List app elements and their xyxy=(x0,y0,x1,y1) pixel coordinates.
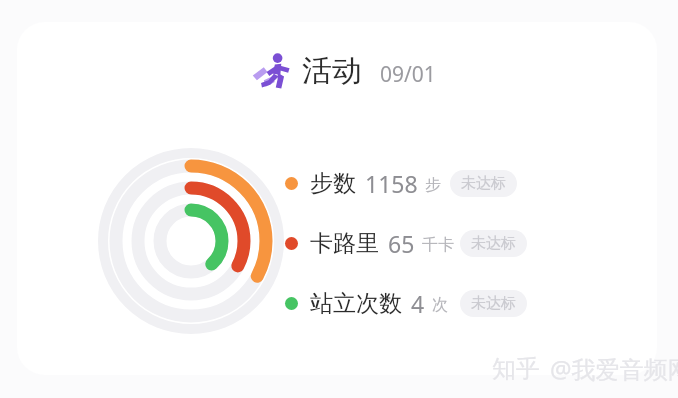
button[interactable]: Activity running icon xyxy=(17,22,657,375)
staticText: 站立次数 xyxy=(310,289,402,318)
staticText: @我爱音频网 xyxy=(550,352,678,385)
staticText: 未达标 xyxy=(471,234,516,253)
staticText: 未达标 xyxy=(461,174,506,193)
button[interactable]: 步数 xyxy=(285,161,635,205)
staticText: 步数 xyxy=(310,169,356,198)
staticText: 1158 xyxy=(365,168,418,199)
staticText: 4 xyxy=(411,288,425,319)
staticText: 次 xyxy=(432,295,448,315)
staticText: 09/01 xyxy=(380,60,436,89)
staticText: 卡路里 xyxy=(310,229,379,258)
button[interactable]: 未达标 xyxy=(460,230,527,257)
staticText: 知乎 xyxy=(492,354,540,384)
other: Activity running icon xyxy=(250,48,296,94)
button[interactable]: 站立次数 xyxy=(285,281,635,325)
button[interactable]: 未达标 xyxy=(460,290,527,317)
button[interactable]: 卡路里 xyxy=(285,221,635,265)
staticText: 活动 xyxy=(302,52,362,90)
staticText: 步 xyxy=(425,175,441,195)
staticText: 65 xyxy=(388,228,415,259)
staticText: 未达标 xyxy=(471,294,516,313)
staticText: 千卡 xyxy=(422,235,454,255)
button[interactable]: 未达标 xyxy=(450,170,517,197)
